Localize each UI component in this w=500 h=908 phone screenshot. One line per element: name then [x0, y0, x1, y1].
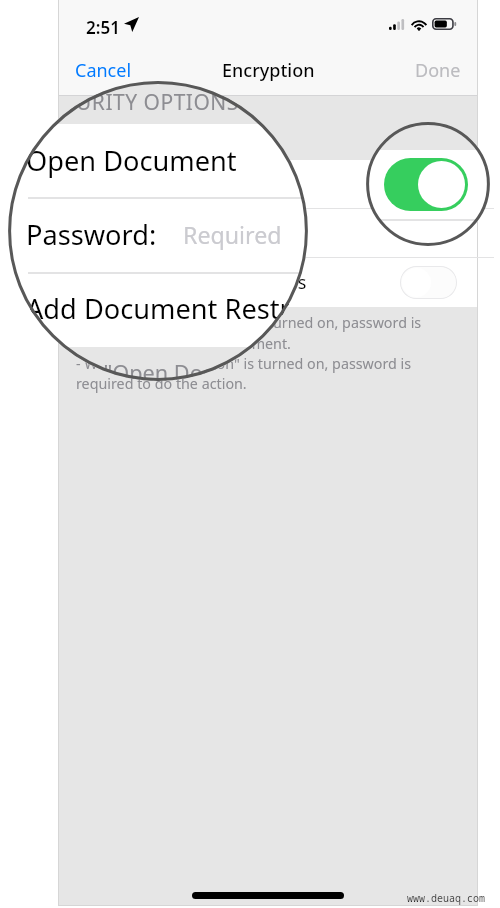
staticText: SECURITY OPTIONS [38, 88, 239, 117]
button[interactable]: Switch off [400, 266, 457, 299]
staticText: Open Document [26, 142, 237, 179]
staticText: Password: [26, 216, 157, 253]
staticText: Password: [76, 221, 163, 246]
button[interactable]: Open Document [59, 160, 477, 209]
staticText: - When "Open Document" is turned on, pas… [26, 358, 308, 381]
staticText: 2:51 [86, 16, 120, 39]
staticText: Required [183, 219, 282, 251]
button[interactable]: Password: [59, 209, 477, 258]
staticText: www.deuaq.com [407, 891, 485, 905]
staticText: - When "Open Document" is turned on, pas… [76, 313, 422, 393]
staticText: Done [415, 58, 461, 83]
staticText: Required [180, 223, 242, 243]
staticText: Add Document Restrictions [26, 290, 308, 327]
button[interactable]: Switch on [400, 168, 457, 201]
staticText: Add Document Restrictions [76, 270, 307, 295]
staticText: Encryption [222, 58, 315, 83]
button[interactable]: Add Document Restrictions [59, 258, 477, 307]
staticText: Cancel [75, 58, 132, 83]
button[interactable]: Cancel [59, 52, 144, 88]
button[interactable]: Done [403, 52, 477, 88]
